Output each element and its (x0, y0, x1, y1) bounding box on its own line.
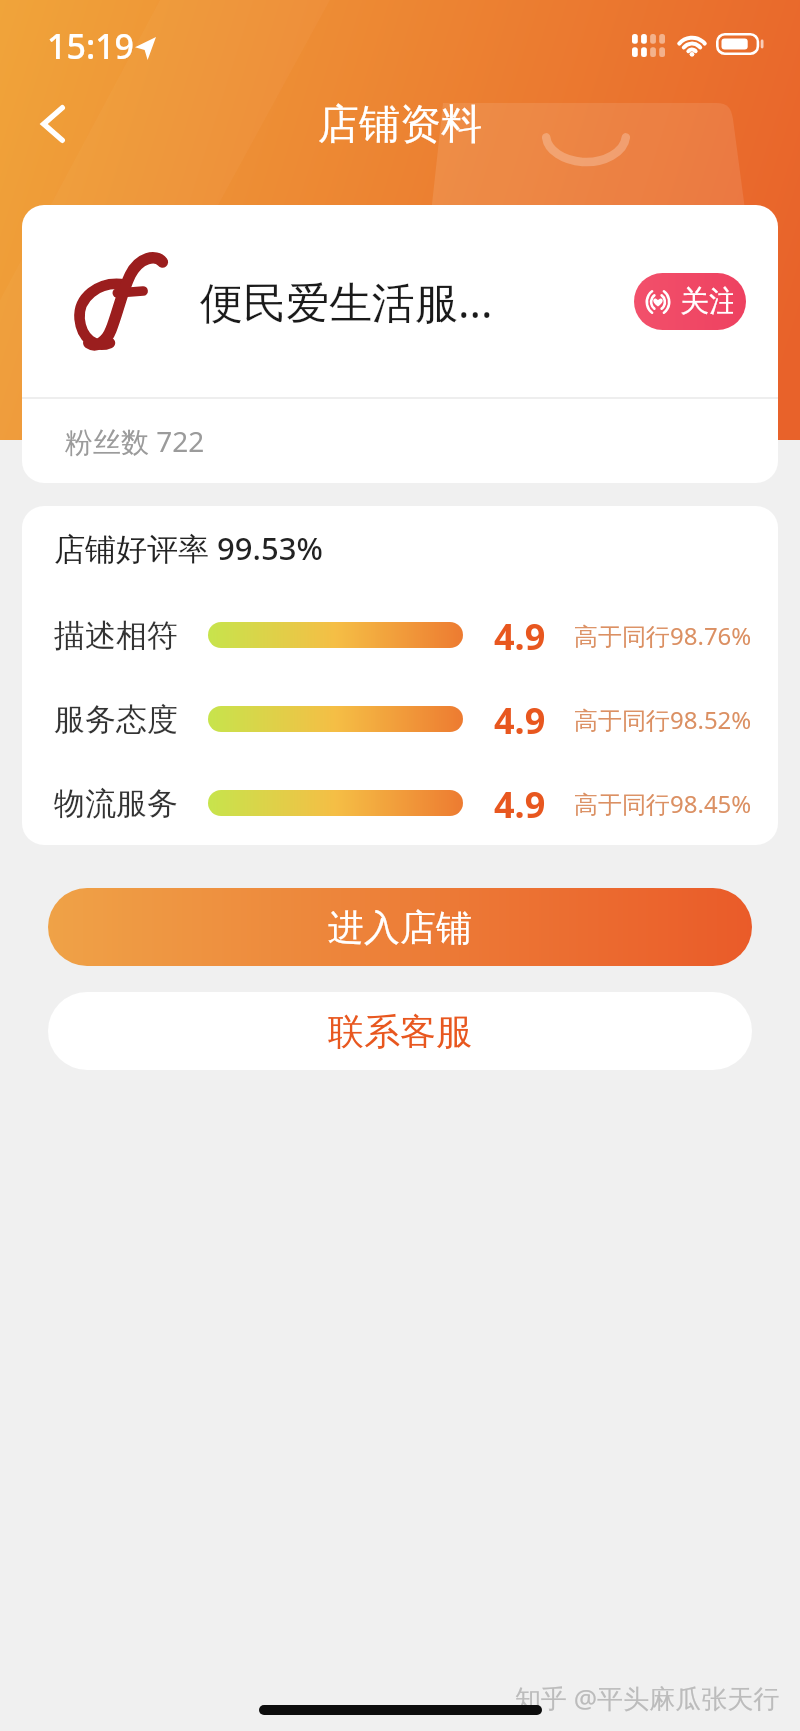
staticText: 店铺好评率 99.53% (54, 527, 323, 569)
staticText: 店铺资料 (318, 99, 482, 151)
staticText: 4.9 (494, 696, 546, 742)
button[interactable]: 关注 (634, 273, 746, 330)
staticText: 便民爱生活服... (200, 272, 493, 331)
staticText: 高于同行98.52% (574, 703, 752, 736)
staticText: 15:19 (47, 23, 135, 69)
staticText: 知乎 @平头麻瓜张天行 (515, 1680, 780, 1716)
button[interactable]: Back (25, 96, 81, 152)
staticText: 进入店铺 (328, 905, 472, 950)
staticText: 物流服务 (54, 784, 178, 823)
button[interactable]: 进入店铺 (48, 888, 752, 966)
staticText: 高于同行98.76% (574, 619, 752, 652)
button[interactable]: 联系客服 (48, 992, 752, 1070)
staticText: 粉丝数 722 (65, 422, 205, 460)
staticText: 描述相符 (54, 616, 178, 655)
staticText: 4.9 (494, 780, 546, 826)
staticText: 联系客服 (328, 1009, 472, 1054)
staticText: 服务态度 (54, 700, 178, 739)
staticText: 高于同行98.45% (574, 787, 752, 820)
staticText: 4.9 (494, 612, 546, 658)
staticText: 关注 (680, 283, 733, 320)
